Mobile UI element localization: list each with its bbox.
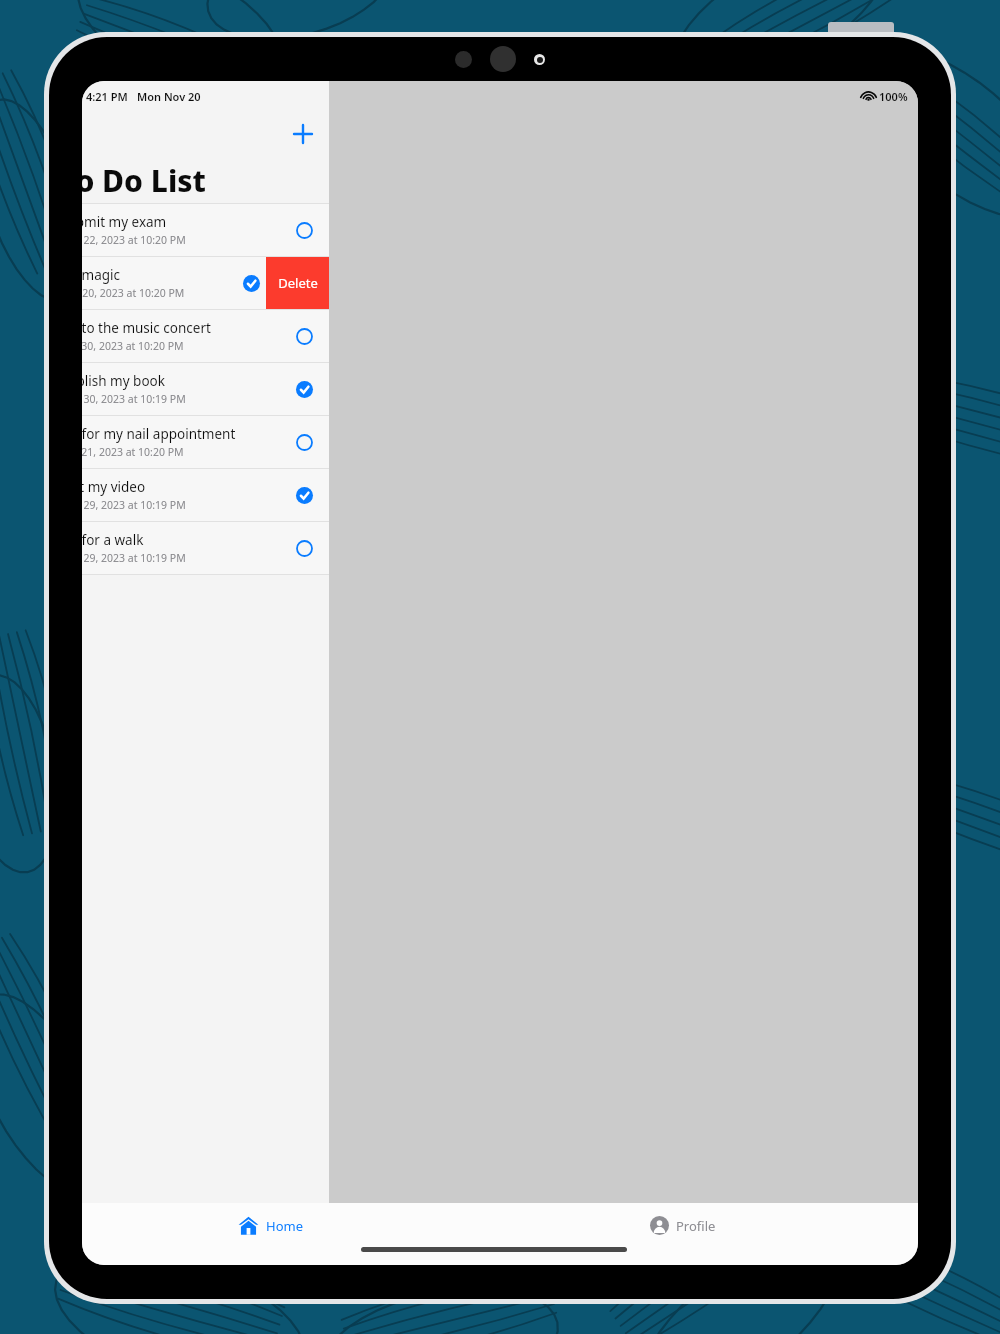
staticText: Mon Nov 20: [137, 89, 201, 104]
staticText: Go for my nail appointment: [82, 425, 236, 443]
staticText: May 22, 2023 at 10:20 PM: [82, 233, 186, 247]
button[interactable]: Mark complete: [289, 427, 319, 457]
button[interactable]: Mark complete: [289, 533, 319, 563]
button[interactable]: Edit my video: [82, 469, 329, 521]
staticText: Publish my book: [82, 372, 165, 390]
staticText: 4:21 PM: [86, 89, 128, 104]
staticText: Nov 20, 2023 at 10:20 PM: [82, 286, 185, 300]
staticText: Submit my exam: [82, 213, 167, 231]
button[interactable]: Mark complete: [289, 321, 319, 351]
button[interactable]: Add task: [285, 116, 321, 152]
staticText: Go to the music concert: [82, 319, 211, 337]
button[interactable]: Mark complete: [289, 215, 319, 245]
staticText: Home: [266, 1217, 303, 1235]
staticText: To Do List: [82, 160, 206, 201]
button[interactable]: Mark incomplete: [289, 480, 319, 510]
button[interactable]: Delete: [266, 257, 329, 309]
staticText: Profile: [676, 1217, 716, 1235]
staticText: Dec 30, 2023 at 10:20 PM: [82, 339, 184, 353]
staticText: Do magic: [82, 266, 120, 284]
staticText: May 29, 2023 at 10:19 PM: [82, 551, 186, 565]
button[interactable]: Go to the music concert: [82, 310, 329, 362]
button[interactable]: Mark incomplete: [289, 374, 319, 404]
button[interactable]: Publish my book: [82, 363, 329, 415]
button[interactable]: Submit my exam: [82, 204, 329, 256]
button[interactable]: Profile: [644, 1212, 722, 1239]
staticText: Edit my video: [82, 478, 146, 496]
staticText: May 29, 2023 at 10:19 PM: [82, 498, 186, 512]
staticText: Delete: [278, 274, 318, 292]
button[interactable]: Do magic: [82, 257, 329, 309]
staticText: May 30, 2023 at 10:19 PM: [82, 392, 186, 406]
staticText: 100%: [879, 89, 908, 104]
staticText: Go for a walk: [82, 531, 144, 549]
staticText: Dec 21, 2023 at 10:20 PM: [82, 445, 184, 459]
button[interactable]: Home: [232, 1211, 309, 1240]
button[interactable]: Go for a walk: [82, 522, 329, 574]
button[interactable]: Mark incomplete: [236, 268, 266, 298]
button[interactable]: Go for my nail appointment: [82, 416, 329, 468]
